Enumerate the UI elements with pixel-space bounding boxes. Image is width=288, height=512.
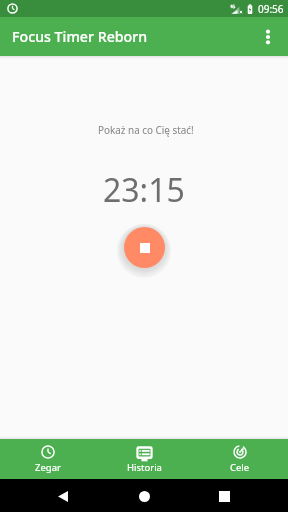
- button[interactable]: Historia: [96, 439, 192, 479]
- staticText: Historia: [127, 461, 162, 474]
- button[interactable]: Zegar: [0, 439, 96, 479]
- button[interactable]: Stop timer: [124, 227, 165, 268]
- button[interactable]: More options: [250, 19, 286, 55]
- button[interactable]: Home: [130, 482, 158, 510]
- staticText: Pokaż na co Cię stać!: [98, 123, 194, 136]
- button[interactable]: Cele: [192, 439, 288, 479]
- button[interactable]: Back: [49, 482, 77, 510]
- button[interactable]: Recents: [210, 482, 238, 510]
- staticText: 09:56: [258, 2, 284, 16]
- staticText: 23:15: [103, 168, 185, 212]
- staticText: Cele: [230, 461, 250, 474]
- staticText: Focus Timer Reborn: [12, 27, 148, 46]
- staticText: Zegar: [35, 461, 61, 474]
